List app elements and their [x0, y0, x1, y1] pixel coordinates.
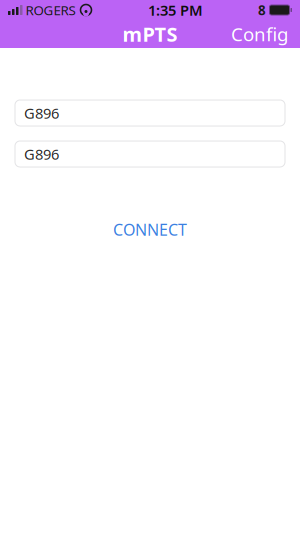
staticText: CONNECT: [113, 219, 187, 240]
staticText: ROGERS: [25, 1, 75, 19]
staticText: 8: [258, 1, 266, 19]
button[interactable]: G896: [15, 141, 285, 167]
staticText: G896: [24, 103, 59, 123]
staticText: 1:35 PM: [148, 0, 203, 20]
staticText: Config: [231, 22, 288, 46]
button[interactable]: G896: [15, 100, 285, 126]
button[interactable]: CONNECT: [99, 211, 201, 248]
staticText: G896: [24, 144, 59, 164]
button[interactable]: Config: [225, 17, 294, 51]
staticText: mPTS: [122, 21, 177, 47]
